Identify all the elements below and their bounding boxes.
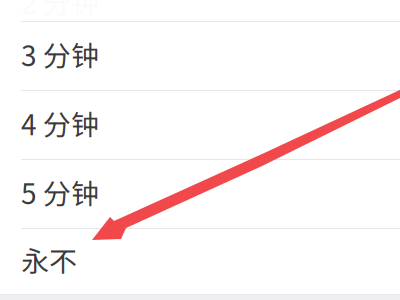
button[interactable]: 永不 [0,229,400,294]
button[interactable]: 5 分钟 [0,160,400,228]
staticText: 永不 [21,239,77,280]
button[interactable]: 3 分钟 [0,22,400,90]
staticText: 3 分钟 [21,34,99,74]
staticText: 2 分钟 [21,0,99,22]
button[interactable]: 4 分钟 [0,91,400,159]
staticText: 5 分钟 [21,172,99,212]
staticText: 4 分钟 [21,103,99,143]
